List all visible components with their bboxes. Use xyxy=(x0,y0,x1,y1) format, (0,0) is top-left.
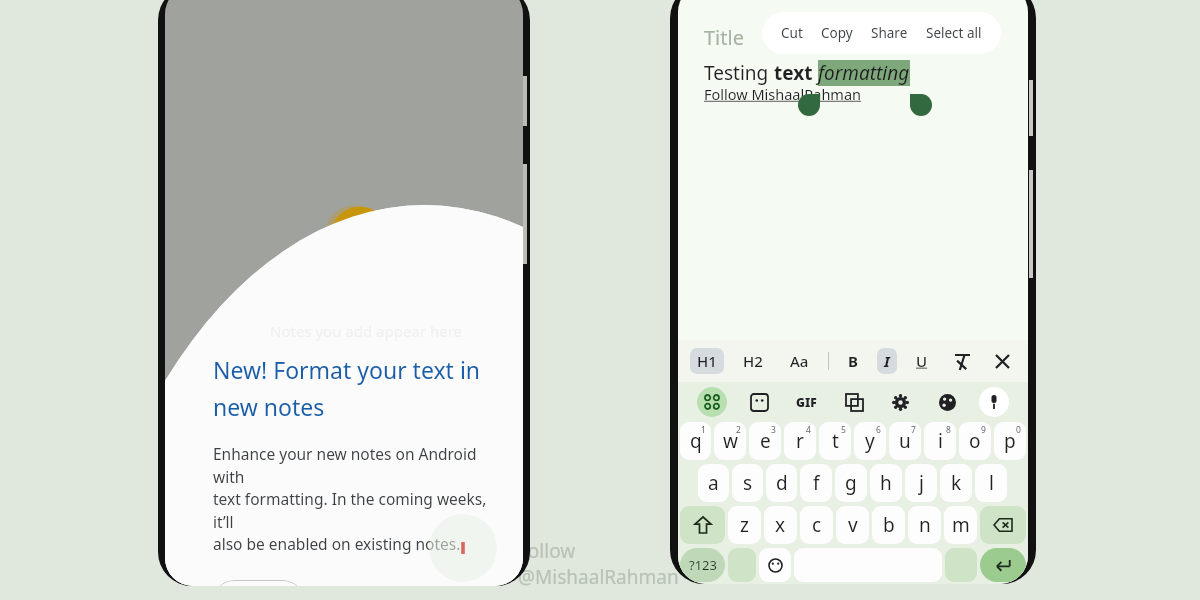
button[interactable]: Comma xyxy=(728,548,756,582)
button[interactable]: c xyxy=(800,506,833,544)
button[interactable]: Clear formatting xyxy=(948,347,976,375)
button[interactable]: Select all xyxy=(917,21,991,45)
staticText: Enhance your new notes on Android with xyxy=(213,443,488,488)
staticText: d xyxy=(776,470,788,496)
staticText: @MishaalRahman xyxy=(518,564,679,590)
button[interactable]: Stickers xyxy=(745,388,773,416)
staticText: 6 xyxy=(876,424,881,436)
staticText: Title xyxy=(704,24,744,51)
button[interactable]: Theme xyxy=(933,388,961,416)
staticText: g xyxy=(845,470,857,496)
button[interactable]: Cut xyxy=(772,21,812,45)
button[interactable]: z xyxy=(728,506,761,544)
button[interactable]: b xyxy=(872,506,905,544)
button[interactable]: Backspace xyxy=(980,506,1026,544)
staticText: H1 xyxy=(697,351,717,371)
button[interactable]: GIF xyxy=(792,390,821,414)
button[interactable]: Settings xyxy=(886,388,914,416)
button[interactable]: i xyxy=(924,422,956,460)
staticText: Share xyxy=(871,24,908,42)
button[interactable]: H1 xyxy=(690,348,724,374)
staticText: 3 xyxy=(771,424,776,436)
staticText: e xyxy=(760,428,771,454)
button[interactable]: n xyxy=(908,506,941,544)
staticText: Select all xyxy=(926,24,982,42)
staticText: h xyxy=(880,470,892,496)
button[interactable]: m xyxy=(944,506,977,544)
button[interactable]: B xyxy=(841,348,865,374)
button[interactable]: k xyxy=(940,464,972,502)
staticText: Testing xyxy=(704,60,774,86)
staticText: also be enabled on existing notes. xyxy=(213,533,461,554)
button[interactable]: Aa xyxy=(783,348,816,374)
staticText: Copy xyxy=(821,24,853,42)
button[interactable]: H2 xyxy=(736,348,770,374)
button[interactable]: a xyxy=(698,464,729,502)
button[interactable]: q xyxy=(680,422,711,460)
staticText: a xyxy=(708,470,719,496)
button[interactable]: l xyxy=(975,464,1007,502)
button[interactable]: Toolbox xyxy=(697,387,727,417)
staticText: B xyxy=(848,351,858,371)
staticText: 5 xyxy=(841,424,846,436)
button[interactable]: Voice input xyxy=(979,387,1009,417)
staticText: w xyxy=(723,428,738,454)
button[interactable]: Translate xyxy=(840,388,868,416)
staticText: n xyxy=(919,512,931,538)
staticText: j xyxy=(919,470,924,496)
button[interactable]: U xyxy=(909,348,935,374)
button[interactable]: I xyxy=(877,348,897,374)
button[interactable]: h xyxy=(870,464,902,502)
button[interactable]: j xyxy=(905,464,937,502)
staticText: text xyxy=(774,60,818,86)
staticText: U xyxy=(916,351,928,371)
staticText: i xyxy=(938,428,943,454)
button[interactable]: s xyxy=(732,464,763,502)
button[interactable]: Got it xyxy=(213,580,304,586)
staticText: l xyxy=(989,470,994,496)
button[interactable]: Enter xyxy=(980,548,1026,582)
staticText: GIF xyxy=(796,394,817,410)
button[interactable]: v xyxy=(836,506,869,544)
button[interactable]: w xyxy=(714,422,746,460)
staticText: z xyxy=(740,512,749,538)
button[interactable]: g xyxy=(835,464,867,502)
staticText: 1 xyxy=(701,424,706,436)
button[interactable]: d xyxy=(766,464,797,502)
staticText: s xyxy=(743,470,753,496)
staticText: u xyxy=(899,428,911,454)
staticText: t xyxy=(832,428,839,454)
staticText: k xyxy=(951,470,962,496)
button[interactable]: Share xyxy=(862,21,917,45)
button[interactable]: Copy xyxy=(812,21,862,45)
staticText: Follow xyxy=(518,538,576,564)
button[interactable]: f xyxy=(800,464,832,502)
button[interactable]: r xyxy=(784,422,816,460)
button[interactable]: o xyxy=(959,422,991,460)
staticText: p xyxy=(1004,428,1016,454)
button[interactable]: Shift xyxy=(680,506,725,544)
button[interactable]: Emoji xyxy=(759,548,791,582)
button[interactable]: x xyxy=(764,506,797,544)
staticText: r xyxy=(796,428,804,454)
button[interactable]: p xyxy=(994,422,1026,460)
staticText: b xyxy=(883,512,895,538)
button[interactable]: New note xyxy=(429,514,497,582)
button[interactable]: t xyxy=(819,422,851,460)
button[interactable]: y xyxy=(854,422,886,460)
staticText: Follow MishaalRahman xyxy=(704,84,862,104)
staticText: 0 xyxy=(1016,424,1021,436)
staticText: x xyxy=(775,512,786,538)
staticText: 9 xyxy=(981,424,986,436)
button[interactable]: Period xyxy=(945,548,977,582)
button[interactable]: ?123 xyxy=(680,548,725,582)
staticText: Aa xyxy=(790,351,809,371)
button[interactable]: u xyxy=(889,422,921,460)
staticText: o xyxy=(969,428,981,454)
button[interactable]: Close xyxy=(988,347,1016,375)
staticText: q xyxy=(690,428,702,454)
button[interactable]: e xyxy=(749,422,781,460)
staticText: Notes you add appear here xyxy=(270,321,463,341)
staticText: New! Format your text in xyxy=(213,354,481,385)
